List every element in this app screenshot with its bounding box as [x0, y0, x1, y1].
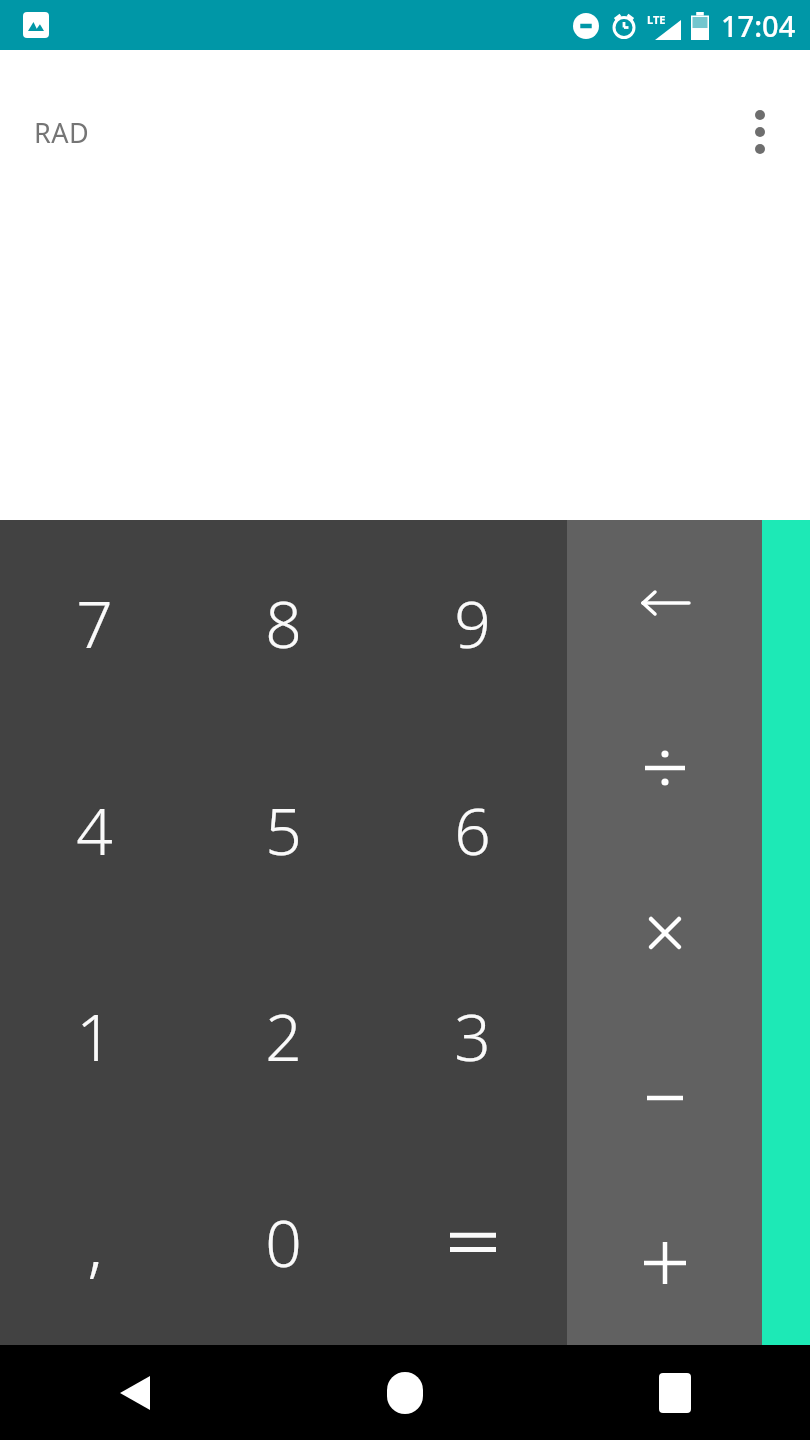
button[interactable]: RAD	[14, 102, 110, 163]
button[interactable]: 5	[189, 727, 378, 933]
staticText: 3	[454, 993, 491, 1080]
staticText: RAD	[34, 114, 90, 151]
button[interactable]: 0	[189, 1139, 378, 1345]
button[interactable]: 3	[378, 933, 567, 1139]
staticText: ,	[87, 1195, 103, 1290]
staticText: 2	[265, 993, 302, 1080]
button[interactable]: 7	[0, 520, 189, 727]
staticText: 6	[454, 787, 491, 874]
button[interactable]: 8	[189, 520, 378, 727]
staticText: 8	[265, 580, 302, 667]
button[interactable]	[378, 1139, 567, 1345]
button[interactable]: 9	[378, 520, 567, 727]
button[interactable]: 6	[378, 727, 567, 933]
button[interactable]: Backspace	[567, 520, 762, 685]
staticText: 5	[265, 787, 302, 874]
staticText: 9	[454, 580, 491, 667]
button[interactable]: ,	[0, 1139, 189, 1345]
staticText: LTE	[647, 12, 666, 27]
button[interactable]: Divide	[567, 685, 762, 850]
button[interactable]: Subtract	[567, 1015, 762, 1180]
staticText: 0	[265, 1199, 302, 1286]
staticText: 7	[76, 580, 113, 667]
button[interactable]: Back	[0, 1345, 270, 1440]
button[interactable]: Home	[270, 1345, 540, 1440]
staticText: 1	[76, 993, 113, 1080]
button[interactable]: Multiply	[567, 850, 762, 1015]
button[interactable]: More options	[724, 96, 796, 168]
button[interactable]: Recent apps	[540, 1345, 810, 1440]
button[interactable]: 4	[0, 727, 189, 933]
staticText: 4	[76, 787, 113, 874]
staticText: 17:04	[721, 6, 796, 45]
button[interactable]: 2	[189, 933, 378, 1139]
button[interactable]: Add	[567, 1180, 762, 1345]
button[interactable]: 1	[0, 933, 189, 1139]
